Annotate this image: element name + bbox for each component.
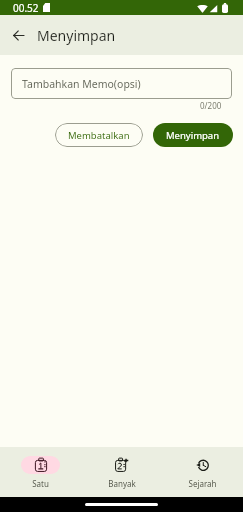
staticText: Membatalkan	[68, 129, 130, 142]
button[interactable]: Satu	[0, 447, 81, 497]
staticText: Menyimpan	[166, 129, 220, 142]
staticText: 00.52	[13, 1, 39, 15]
button[interactable]: Sejarah	[162, 447, 243, 497]
staticText: Menyimpan	[37, 26, 116, 45]
staticText: Satu	[32, 478, 49, 489]
staticText: Banyak	[108, 478, 136, 489]
staticText: Sejarah	[188, 478, 217, 489]
staticText: 0/200	[200, 100, 222, 111]
staticText: Tambahkan Memo(opsi)	[22, 77, 141, 91]
button[interactable]: Tambahkan Memo(opsi)	[11, 68, 232, 99]
button[interactable]: Back	[4, 21, 32, 49]
button[interactable]: Membatalkan	[55, 123, 143, 147]
button[interactable]: Banyak	[81, 447, 162, 497]
button[interactable]: Menyimpan	[153, 123, 233, 147]
